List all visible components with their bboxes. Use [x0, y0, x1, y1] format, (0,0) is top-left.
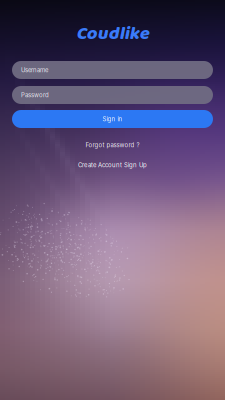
button[interactable]: Sign in [12, 110, 213, 128]
button[interactable]: Create Account Sign Up [78, 160, 147, 170]
button[interactable]: Username [12, 61, 213, 79]
staticText: Username [21, 66, 48, 74]
staticText: Create Account Sign Up [78, 161, 147, 169]
staticText: Forgot password ? [85, 141, 139, 149]
button[interactable]: Password [12, 86, 213, 104]
staticText: Password [21, 91, 49, 99]
staticText: Coudlike [76, 19, 149, 48]
button[interactable]: Forgot password ? [85, 140, 139, 150]
staticText: Sign in [102, 115, 122, 123]
